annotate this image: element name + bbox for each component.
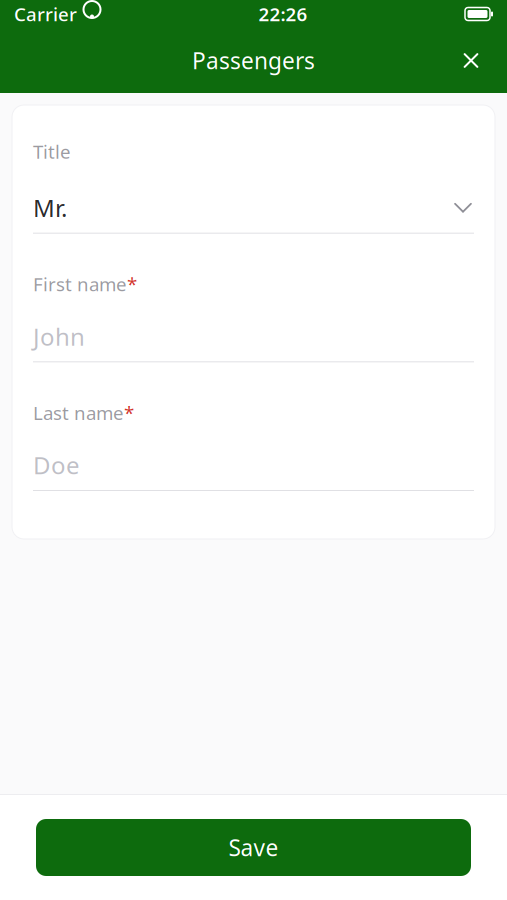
staticText: Mr. <box>33 192 67 224</box>
staticText: Last name <box>33 400 124 425</box>
staticText: 22:26 <box>258 2 307 26</box>
staticText: Carrier <box>14 2 77 26</box>
button[interactable]: Save <box>36 819 471 876</box>
button[interactable]: John <box>33 296 474 362</box>
button[interactable]: Doe <box>33 425 474 491</box>
staticText: Passengers <box>192 45 315 75</box>
staticText: * <box>127 272 137 296</box>
staticText: Doe <box>33 449 80 481</box>
staticText: * <box>124 400 134 425</box>
staticText: First name <box>33 272 127 296</box>
staticText: Title <box>33 139 71 164</box>
button[interactable]: Mr. <box>33 164 474 234</box>
staticText: John <box>33 320 85 352</box>
button[interactable]: Close <box>449 38 493 82</box>
staticText: Save <box>228 832 278 862</box>
